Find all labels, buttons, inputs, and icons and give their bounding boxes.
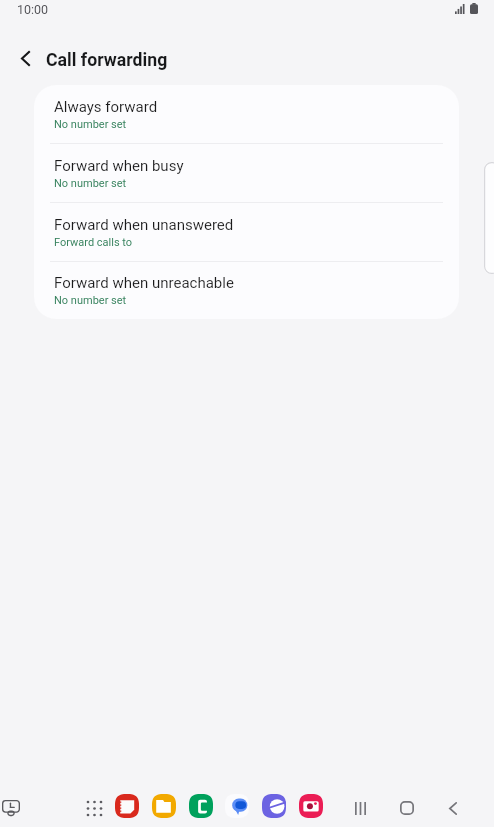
staticText: 10:00 — [17, 2, 49, 17]
staticText: No number set — [54, 294, 127, 307]
button[interactable] — [0, 793, 26, 823]
staticText: Forward calls to — [54, 236, 133, 249]
button[interactable]: App — [111, 790, 143, 822]
staticText: No number set — [54, 177, 127, 190]
button[interactable]: Back — [435, 790, 471, 826]
button[interactable]: Recents — [342, 790, 378, 826]
button[interactable]: App — [185, 790, 217, 822]
button[interactable]: App — [258, 790, 290, 822]
button[interactable]: App — [148, 790, 180, 822]
button[interactable]: App — [295, 790, 327, 822]
button[interactable] — [80, 794, 108, 822]
staticText: No number set — [54, 118, 127, 131]
staticText: Call forwarding — [46, 50, 168, 71]
button[interactable]: Forward when unanswered — [34, 203, 459, 262]
staticText: Always forward — [54, 98, 158, 116]
staticText: Forward when unreachable — [54, 274, 234, 292]
button[interactable]: Forward when busy — [34, 144, 459, 203]
button[interactable]: App — [221, 790, 253, 822]
staticText: Forward when unanswered — [54, 216, 234, 234]
button[interactable]: Forward when unreachable — [34, 262, 459, 319]
button[interactable]: Back — [3, 36, 47, 80]
staticText: Forward when busy — [54, 157, 184, 175]
button[interactable]: Edge panel — [484, 162, 494, 274]
button[interactable]: Home — [389, 790, 425, 826]
button[interactable]: Always forward — [34, 85, 459, 144]
